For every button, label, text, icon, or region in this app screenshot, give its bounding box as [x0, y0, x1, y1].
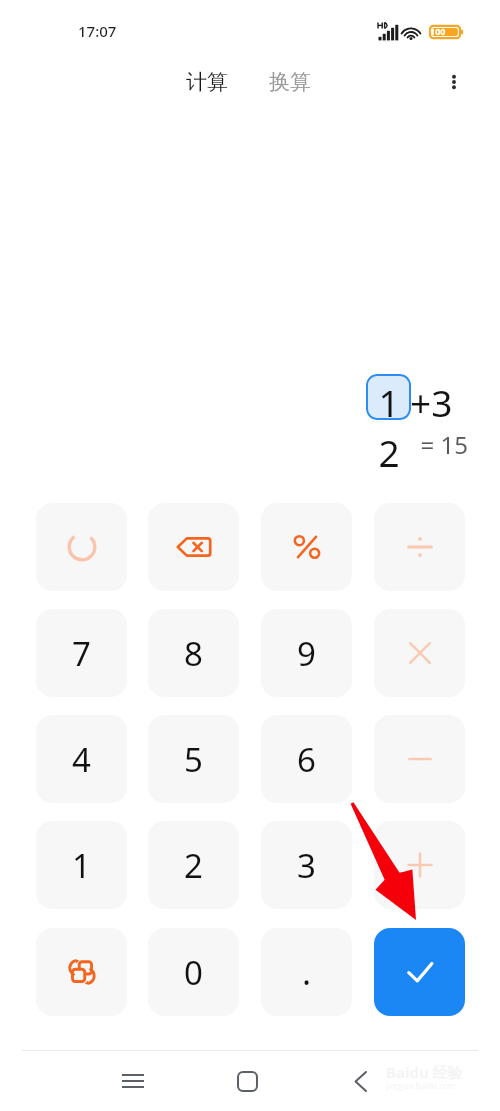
staticText: . — [302, 949, 312, 995]
button[interactable]: 计算 — [170, 63, 244, 101]
button[interactable]: Backspace — [148, 503, 239, 591]
staticText: 17:07 — [78, 21, 117, 41]
button[interactable]: More options — [432, 60, 476, 104]
button[interactable]: Home — [217, 1055, 277, 1107]
button[interactable]: 9 — [261, 609, 352, 697]
button[interactable]: Plus — [374, 821, 465, 909]
staticText: 100 — [430, 25, 446, 37]
button[interactable]: Divide — [374, 503, 465, 591]
staticText: 8 — [184, 631, 203, 676]
button[interactable]: 3 — [261, 821, 352, 909]
button[interactable]: 0 — [148, 928, 239, 1016]
button[interactable]: 4 — [36, 715, 127, 803]
button[interactable]: 2 — [148, 821, 239, 909]
staticText: 换算 — [269, 69, 311, 95]
button[interactable]: 8 — [148, 609, 239, 697]
staticText: Baidu 经验 — [386, 1062, 463, 1082]
staticText: 4 — [72, 737, 91, 782]
staticText: 6 — [297, 737, 316, 782]
staticText: 计算 — [186, 69, 228, 95]
staticText: 9 — [297, 631, 316, 676]
button[interactable]: 6 — [261, 715, 352, 803]
button[interactable]: 换算 — [253, 63, 327, 101]
staticText: = 15 — [280, 428, 468, 461]
button[interactable]: Percent — [261, 503, 352, 591]
button[interactable]: 5 — [148, 715, 239, 803]
staticText: 2 — [184, 843, 203, 888]
button[interactable]: Back — [330, 1055, 390, 1107]
button[interactable]: 1 — [36, 821, 127, 909]
button[interactable]: Menu — [103, 1055, 163, 1107]
staticText: 7 — [72, 631, 91, 676]
staticText: 5 — [184, 737, 203, 782]
staticText: jingyan.baidu.com — [386, 1080, 456, 1091]
button[interactable]: Multiply — [374, 609, 465, 697]
button[interactable]: 7 — [36, 609, 127, 697]
button[interactable]: Clear — [36, 503, 127, 591]
staticText: 3 — [297, 843, 316, 888]
staticText: 1 — [72, 843, 91, 888]
button[interactable]: Minus — [374, 715, 465, 803]
staticText: 0 — [184, 950, 203, 995]
staticText: +3 — [410, 377, 453, 427]
button[interactable]: Swap — [36, 928, 127, 1016]
button[interactable]: Equals — [374, 928, 465, 1016]
button[interactable]: . — [261, 928, 352, 1016]
staticText: 12 — [368, 377, 410, 477]
